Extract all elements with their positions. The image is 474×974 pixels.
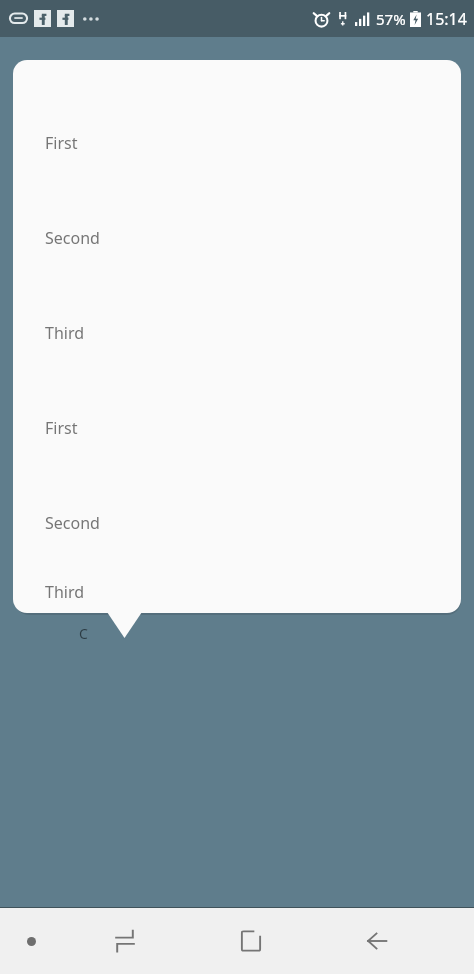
staticText: First [45,132,78,154]
button[interactable]: Second [13,190,461,285]
button[interactable]: Third [13,570,461,613]
staticText: Second [45,512,100,534]
staticText: Third [45,322,85,344]
button[interactable]: Second [13,475,461,570]
button[interactable]: Recents [62,908,188,974]
button[interactable]: First [13,380,461,475]
button[interactable]: Menu [0,908,62,974]
button[interactable]: Home [188,908,314,974]
staticText: Third [45,581,85,603]
staticText: 15:14 [426,8,467,30]
button[interactable]: First [13,95,461,190]
staticText: First [45,417,78,439]
staticText: Second [45,227,100,249]
button[interactable]: Third [13,285,461,380]
staticText: 57% [376,9,406,29]
staticText: C [79,624,88,643]
button[interactable]: Back [314,908,440,974]
